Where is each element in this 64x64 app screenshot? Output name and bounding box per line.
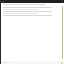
button[interactable] [3,6,61,8]
button[interactable] [3,12,61,14]
button[interactable]: Navigate up [1,0,64,3]
button[interactable] [3,14,61,16]
button[interactable]: Navigate up [2,1,4,3]
button[interactable] [3,8,61,10]
button[interactable] [3,10,61,12]
